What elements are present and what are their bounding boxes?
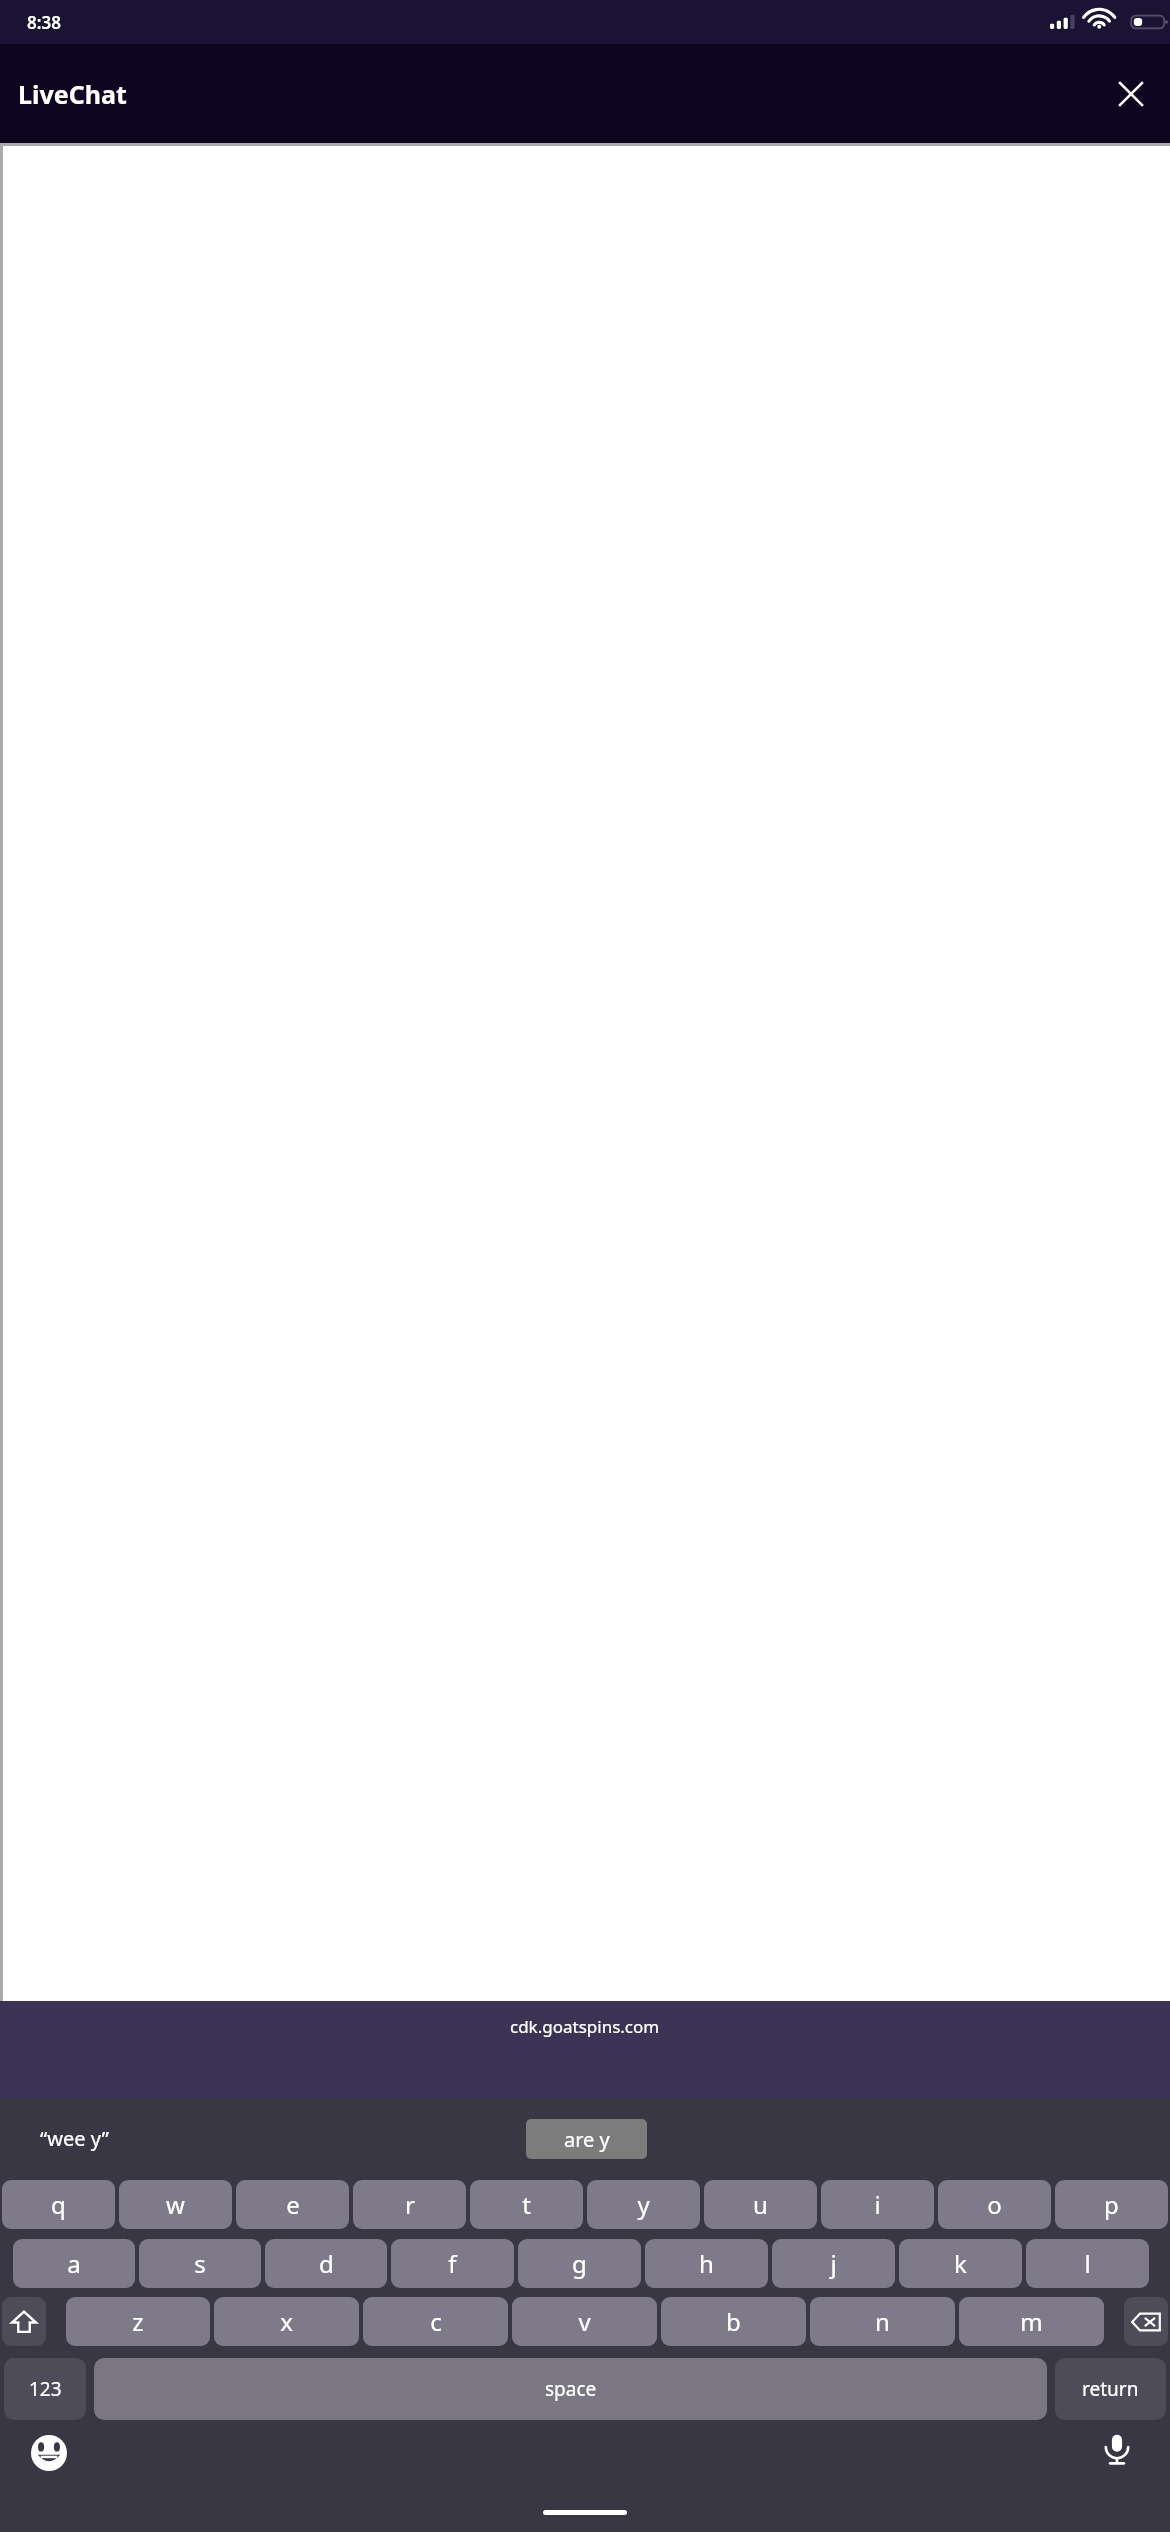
staticText: m xyxy=(1020,2305,1043,2338)
staticText: h xyxy=(699,2247,714,2280)
button[interactable]: Backspace xyxy=(1124,2297,1168,2346)
staticText: l xyxy=(1084,2247,1091,2280)
staticText: j xyxy=(830,2247,837,2280)
button[interactable]: space xyxy=(94,2358,1047,2420)
staticText: g xyxy=(572,2247,587,2280)
button[interactable]: x xyxy=(214,2297,359,2346)
button[interactable]: z xyxy=(66,2297,210,2346)
staticText: cdk.goatspins.com xyxy=(510,2015,660,2038)
button[interactable]: y xyxy=(587,2180,700,2229)
staticText: d xyxy=(319,2247,334,2280)
button[interactable]: h xyxy=(645,2239,768,2288)
button[interactable]: return xyxy=(1055,2358,1166,2420)
staticText: v xyxy=(578,2305,591,2338)
staticText: b xyxy=(726,2305,741,2338)
button[interactable]: i xyxy=(821,2180,934,2229)
button[interactable]: p xyxy=(1055,2180,1168,2229)
button[interactable]: n xyxy=(810,2297,955,2346)
button[interactable]: b xyxy=(661,2297,806,2346)
staticText: return xyxy=(1082,2376,1139,2402)
staticText: q xyxy=(51,2188,66,2221)
button[interactable]: k xyxy=(899,2239,1022,2288)
staticText: c xyxy=(430,2305,442,2338)
button[interactable]: t xyxy=(470,2180,583,2229)
button[interactable]: u xyxy=(704,2180,817,2229)
staticText: y xyxy=(637,2188,650,2221)
button[interactable]: g xyxy=(518,2239,641,2288)
button[interactable]: m xyxy=(959,2297,1104,2346)
button[interactable]: Dictation xyxy=(1090,2422,1144,2476)
staticText: p xyxy=(1104,2188,1119,2221)
staticText: LiveChat xyxy=(18,77,127,111)
staticText: 8:38 xyxy=(27,11,61,34)
button[interactable]: e xyxy=(236,2180,349,2229)
button[interactable]: “wee y” xyxy=(34,2119,115,2158)
staticText: a xyxy=(67,2247,81,2280)
staticText: u xyxy=(753,2188,768,2221)
staticText: r xyxy=(405,2188,415,2221)
staticText: w xyxy=(166,2188,185,2221)
button[interactable]: d xyxy=(265,2239,387,2288)
button[interactable]: Close xyxy=(1106,69,1156,119)
button[interactable]: j xyxy=(772,2239,895,2288)
staticText: x xyxy=(280,2305,293,2338)
button[interactable]: 123 xyxy=(4,2358,86,2420)
button[interactable]: are y xyxy=(526,2119,647,2159)
staticText: i xyxy=(874,2188,881,2221)
button[interactable]: w xyxy=(119,2180,232,2229)
button[interactable]: v xyxy=(512,2297,657,2346)
staticText: s xyxy=(194,2247,206,2280)
staticText: f xyxy=(448,2247,457,2280)
staticText: space xyxy=(545,2376,597,2402)
button[interactable]: Emoji xyxy=(22,2426,76,2480)
button[interactable]: Shift xyxy=(2,2297,46,2346)
button[interactable]: l xyxy=(1026,2239,1149,2288)
button[interactable]: a xyxy=(13,2239,135,2288)
staticText: “wee y” xyxy=(40,2125,109,2152)
button[interactable]: c xyxy=(363,2297,508,2346)
button[interactable]: q xyxy=(2,2180,115,2229)
button[interactable]: s xyxy=(139,2239,261,2288)
staticText: 123 xyxy=(29,2376,62,2402)
staticText: n xyxy=(875,2305,890,2338)
staticText: z xyxy=(132,2305,144,2338)
staticText: k xyxy=(954,2247,967,2280)
button[interactable]: f xyxy=(391,2239,514,2288)
staticText: t xyxy=(522,2188,531,2221)
staticText: o xyxy=(987,2188,1002,2221)
button[interactable]: r xyxy=(353,2180,466,2229)
staticText: are y xyxy=(564,2126,610,2153)
staticText: e xyxy=(286,2188,300,2221)
button[interactable]: o xyxy=(938,2180,1051,2229)
